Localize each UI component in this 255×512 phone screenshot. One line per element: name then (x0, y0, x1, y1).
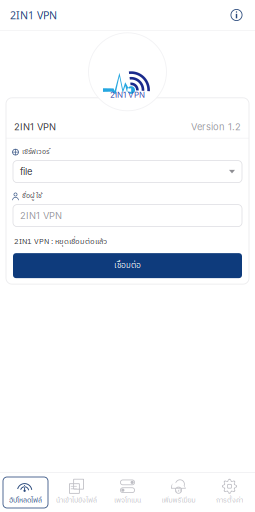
staticText: 2IN1 VPN : หยุดเชื่อมต่อแล้ว (14, 236, 107, 248)
staticText: file (20, 166, 32, 177)
staticText: 2IN1 VPN (10, 8, 57, 22)
button[interactable]: นำเข้าไปยังไฟล์ (51, 473, 102, 512)
button[interactable]: เชื่อมต่อ (13, 253, 242, 278)
button[interactable]: เพจโทเมน (102, 473, 153, 512)
button[interactable]: Info (228, 6, 245, 23)
staticText: 2IN1 VPN (110, 90, 145, 100)
staticText: ชื่อผู้ใช้ (22, 191, 42, 202)
staticText: 2IN1 VPN (20, 210, 62, 221)
staticText: อัปโหลดไฟล์ (9, 495, 42, 506)
staticText: เซิร์ฟเวอร์ (22, 147, 50, 158)
button[interactable]: อัปโหลดไฟล์ (0, 473, 51, 512)
button[interactable]: การตั้งค่า (204, 473, 255, 512)
staticText: นำเข้าไปยังไฟล์ (56, 495, 97, 506)
staticText: การตั้งค่า (216, 495, 243, 506)
staticText: เพิ่มพรีเมี่ยม (161, 495, 195, 506)
button[interactable]: เพิ่มพรีเมี่ยม (153, 473, 204, 512)
staticText: เพจโทเมน (114, 495, 141, 506)
button[interactable]: file (13, 161, 242, 183)
staticText: เชื่อมต่อ (114, 259, 141, 272)
staticText: 2IN1 VPN (14, 121, 56, 132)
staticText: Version 1.2 (191, 121, 241, 132)
